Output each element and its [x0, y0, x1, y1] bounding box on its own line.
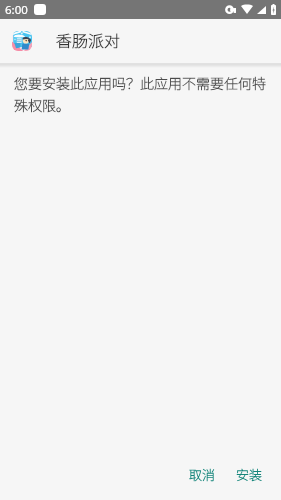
staticText: 6:00: [5, 2, 28, 18]
staticText: 香肠派对: [56, 28, 121, 51]
button[interactable]: 取消: [178, 452, 225, 497]
button[interactable]: 安装: [225, 452, 274, 497]
staticText: 您要安装此应用吗？此应用不需要任何特殊权限。: [14, 73, 269, 115]
staticText: 安装: [236, 465, 263, 484]
staticText: 取消: [189, 465, 216, 484]
